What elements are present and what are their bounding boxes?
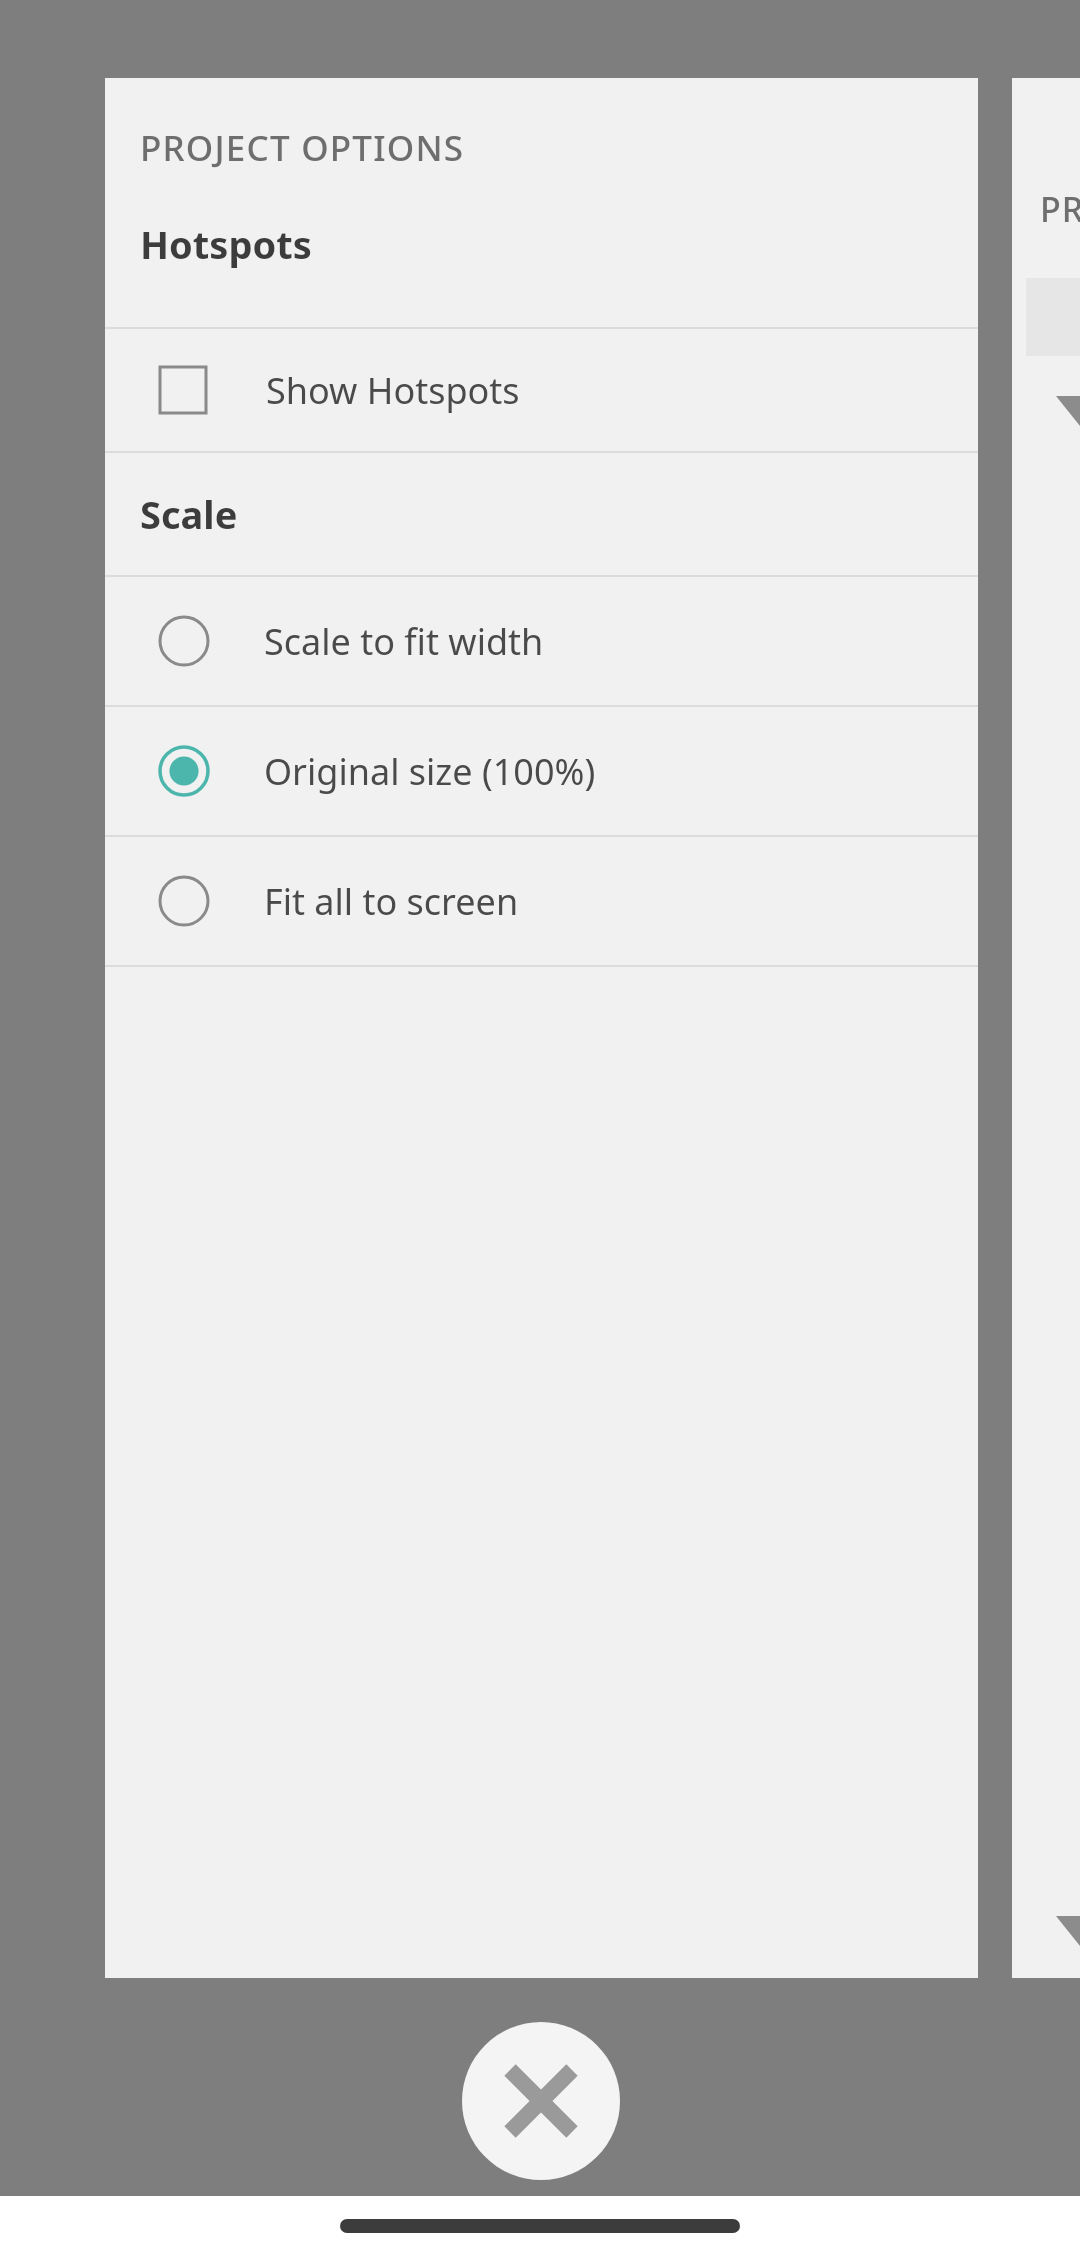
button[interactable]: Scale to fit width xyxy=(105,577,978,705)
button[interactable]: Fit all to screen xyxy=(105,837,978,965)
button[interactable]: Original size (100%) xyxy=(105,707,978,835)
staticText: PROJECT OPTIONS xyxy=(140,124,465,172)
button[interactable]: Close xyxy=(462,2022,620,2180)
staticText: PR xyxy=(1040,186,1080,232)
staticText: Original size (100%) xyxy=(264,747,596,796)
staticText: Fit all to screen xyxy=(264,877,519,926)
staticText: Scale xyxy=(140,488,238,540)
staticText: Scale to fit width xyxy=(264,617,544,666)
staticText: Hotspots xyxy=(140,218,312,270)
staticText: Show Hotspots xyxy=(266,366,520,415)
button[interactable]: Show Hotspots xyxy=(105,329,978,451)
